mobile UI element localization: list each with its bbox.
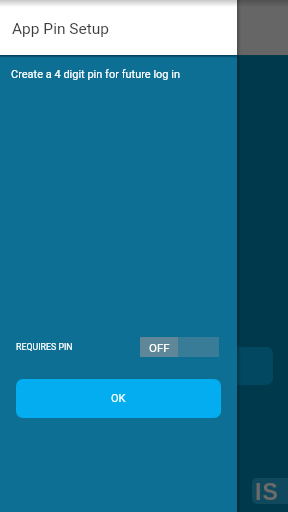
staticText: REQUIRES PIN — [16, 342, 73, 352]
staticText: App Pin Setup — [12, 20, 110, 38]
staticText: OK — [111, 392, 126, 405]
button[interactable]: OK — [16, 379, 221, 418]
staticText: OFF — [149, 341, 170, 354]
staticText: Create a 4 digit pin for future log in — [11, 68, 180, 81]
staticText: IS — [255, 479, 280, 504]
button[interactable]: App Pin Setup — [0, 0, 237, 55]
button[interactable]: Requires pin, off — [140, 337, 219, 357]
